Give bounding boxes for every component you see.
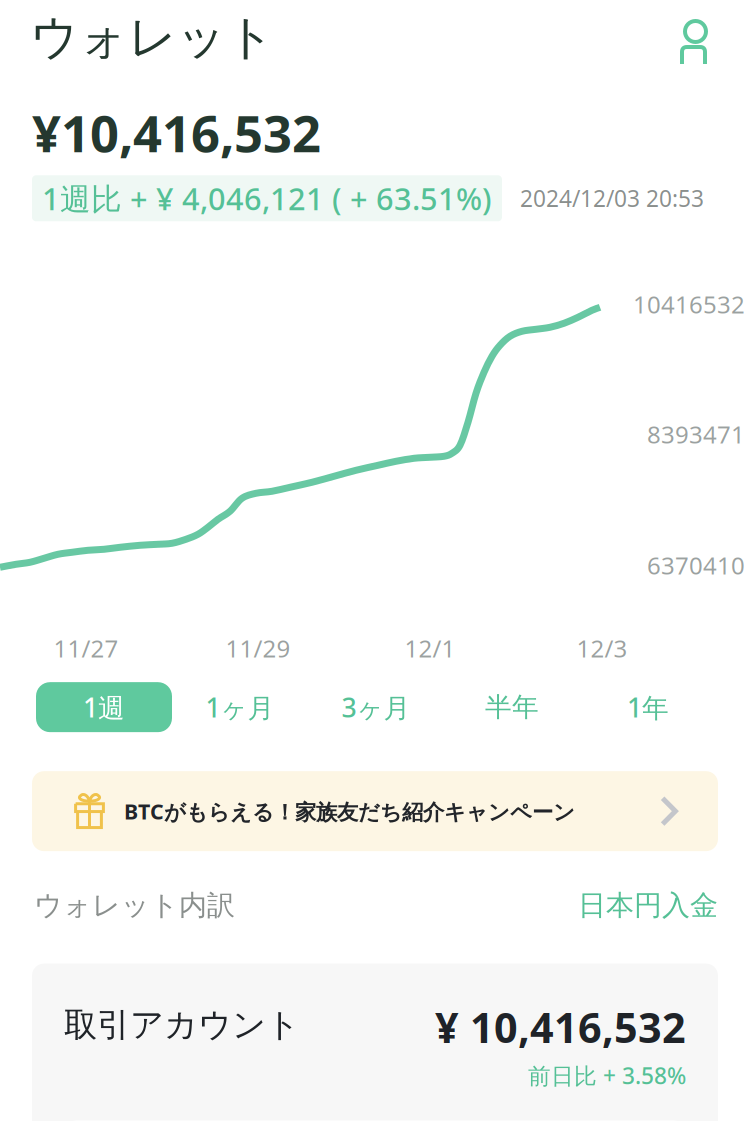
staticText: 11/27 — [53, 632, 118, 664]
staticText: 日本円入金 — [578, 888, 718, 923]
staticText: 12/1 — [404, 632, 455, 664]
staticText: ¥10,416,532 — [32, 99, 321, 166]
staticText: 1年 — [627, 689, 669, 725]
button[interactable]: 3ヶ月 — [308, 682, 444, 732]
button[interactable]: 1週 — [36, 682, 172, 732]
staticText: 前日比 + 3.58% — [528, 1060, 686, 1090]
button[interactable]: 日本円入金 — [578, 888, 718, 923]
staticText: ¥ 10,416,532 — [435, 999, 686, 1054]
button[interactable]: アカウント — [680, 22, 707, 84]
staticText: 10416532 — [633, 288, 745, 320]
staticText: 3ヶ月 — [341, 689, 410, 725]
staticText: 半年 — [485, 691, 539, 724]
staticText: 8393471 — [647, 418, 745, 450]
button[interactable]: 半年 — [444, 682, 580, 732]
button[interactable]: BTCがもらえる！家族友だち紹介キャンペーン — [32, 771, 718, 851]
staticText: BTCがもらえる！家族友だち紹介キャンペーン — [124, 797, 575, 825]
staticText: 2024/12/03 20:53 — [520, 183, 704, 213]
staticText: ウォレット — [30, 8, 275, 67]
staticText: 1週 — [83, 689, 125, 725]
staticText: 1ヶ月 — [205, 689, 274, 725]
staticText: 1週比 + ¥ 4,046,121 ( + 63.51%) — [42, 178, 492, 219]
staticText: 6370410 — [647, 549, 745, 581]
staticText: 12/3 — [576, 632, 627, 664]
button[interactable]: 1年 — [580, 682, 716, 732]
staticText: 11/29 — [225, 632, 290, 664]
staticText: 取引アカウント — [64, 1004, 300, 1045]
button[interactable]: 1ヶ月 — [172, 682, 308, 732]
staticText: ウォレット内訳 — [34, 888, 235, 923]
